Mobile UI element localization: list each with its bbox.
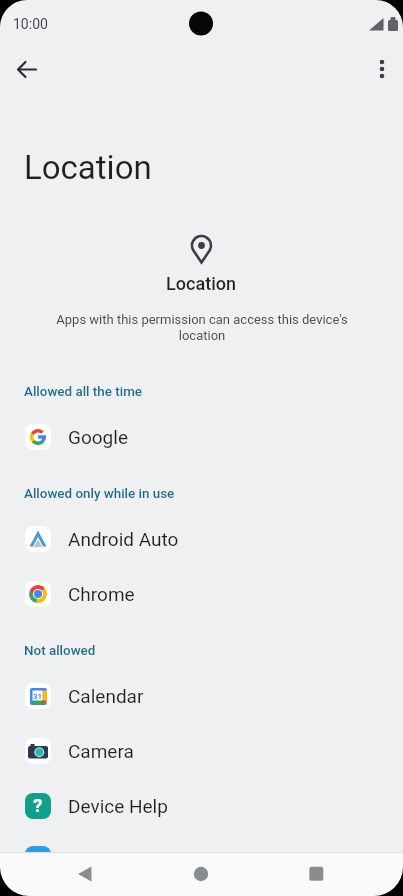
button[interactable]: Android Auto [0,511,403,566]
button[interactable] [296,854,336,894]
staticText: Allowed all the time [24,384,143,400]
staticText: Google [68,426,128,448]
staticText: Chrome [68,583,135,605]
staticText: Allowed only while in use [24,486,175,502]
button[interactable]: Camera [0,723,403,778]
button[interactable]: Google [0,409,403,464]
staticText: Not allowed [24,643,96,659]
button[interactable] [9,51,45,87]
staticText: 10:00 [13,16,48,32]
staticText: ? [33,794,43,816]
button[interactable] [64,854,104,894]
staticText: 31 [33,692,43,701]
button[interactable] [364,51,400,87]
staticText: Location [24,148,152,187]
staticText: Device Help [68,795,168,817]
button[interactable]: ? [0,778,403,833]
button[interactable]: Chrome [0,566,403,621]
staticText: Calendar [68,685,144,707]
staticText: Camera [68,740,134,762]
staticText: Android Auto [68,528,179,550]
staticText: Location [166,273,237,294]
staticText: Apps with this permission can access thi… [56,312,348,343]
button[interactable] [181,854,221,894]
button[interactable]: 31 [0,668,403,723]
